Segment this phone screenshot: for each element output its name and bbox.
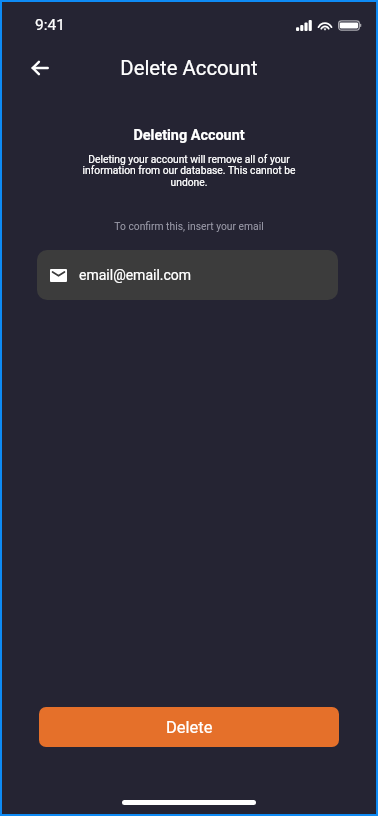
button[interactable]: Delete — [39, 707, 339, 747]
staticText: Deleting your account will remove all of… — [81, 153, 297, 189]
staticText: email@email.com — [79, 267, 192, 283]
staticText: Delete — [166, 718, 213, 737]
staticText: 9:41 — [35, 16, 65, 34]
staticText: To confirm this, insert your email — [2, 220, 376, 232]
button[interactable]: email@email.com — [37, 250, 338, 300]
staticText: Delete Account — [2, 56, 376, 80]
button[interactable]: Back — [21, 49, 59, 87]
staticText: Deleting Account — [2, 127, 376, 144]
